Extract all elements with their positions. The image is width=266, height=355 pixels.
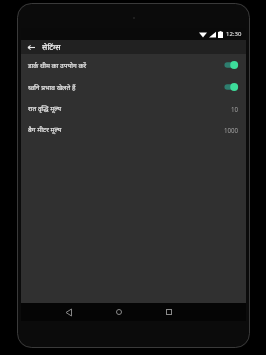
staticText: 1000	[224, 126, 239, 134]
button[interactable]: Back	[61, 304, 77, 320]
button[interactable]: रात वृद्धि मूल्य	[21, 98, 246, 119]
staticText: 12:30	[226, 30, 242, 38]
staticText: ध्वनि प्रभाव खेलते हैं	[28, 83, 223, 92]
button[interactable]: बैग मीटर मूल्य	[21, 119, 246, 140]
staticText: बैग मीटर मूल्य	[28, 125, 224, 134]
button[interactable]: ध्वनि प्रभाव खेलते हैं	[21, 76, 246, 98]
staticText: रात वृद्धि मूल्य	[28, 104, 231, 113]
button[interactable]: Back	[25, 41, 37, 53]
staticText: 10	[231, 105, 239, 113]
button[interactable]: Home	[111, 304, 127, 320]
button[interactable]: डार्क थीम का उपयोग करें	[21, 54, 246, 76]
button[interactable]: Recent apps	[161, 304, 177, 320]
staticText: डार्क थीम का उपयोग करें	[28, 61, 223, 70]
staticText: सेटिंग्स	[42, 42, 61, 52]
